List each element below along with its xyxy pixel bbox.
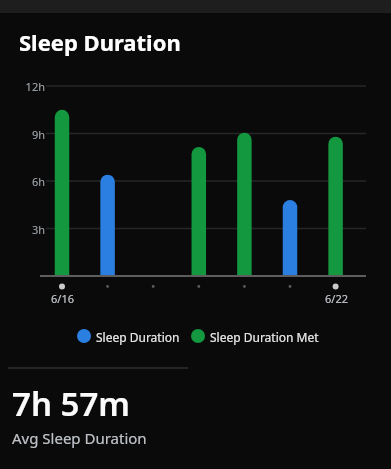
staticText: 6h [31,174,45,189]
staticText: Avg Sleep Duration [12,428,147,448]
staticText: 3h [31,222,45,237]
staticText: 7h 57m [12,381,130,426]
staticText: 6/22 [325,291,348,306]
button[interactable] [0,0,391,469]
staticText: 6/16 [51,291,74,306]
staticText: 9h [31,127,45,142]
staticText: 12h [25,79,45,94]
staticText: Sleep Duration [19,27,181,57]
button[interactable]: Sleep Duration Met [210,329,319,345]
button[interactable]: Sleep Duration [96,329,180,345]
